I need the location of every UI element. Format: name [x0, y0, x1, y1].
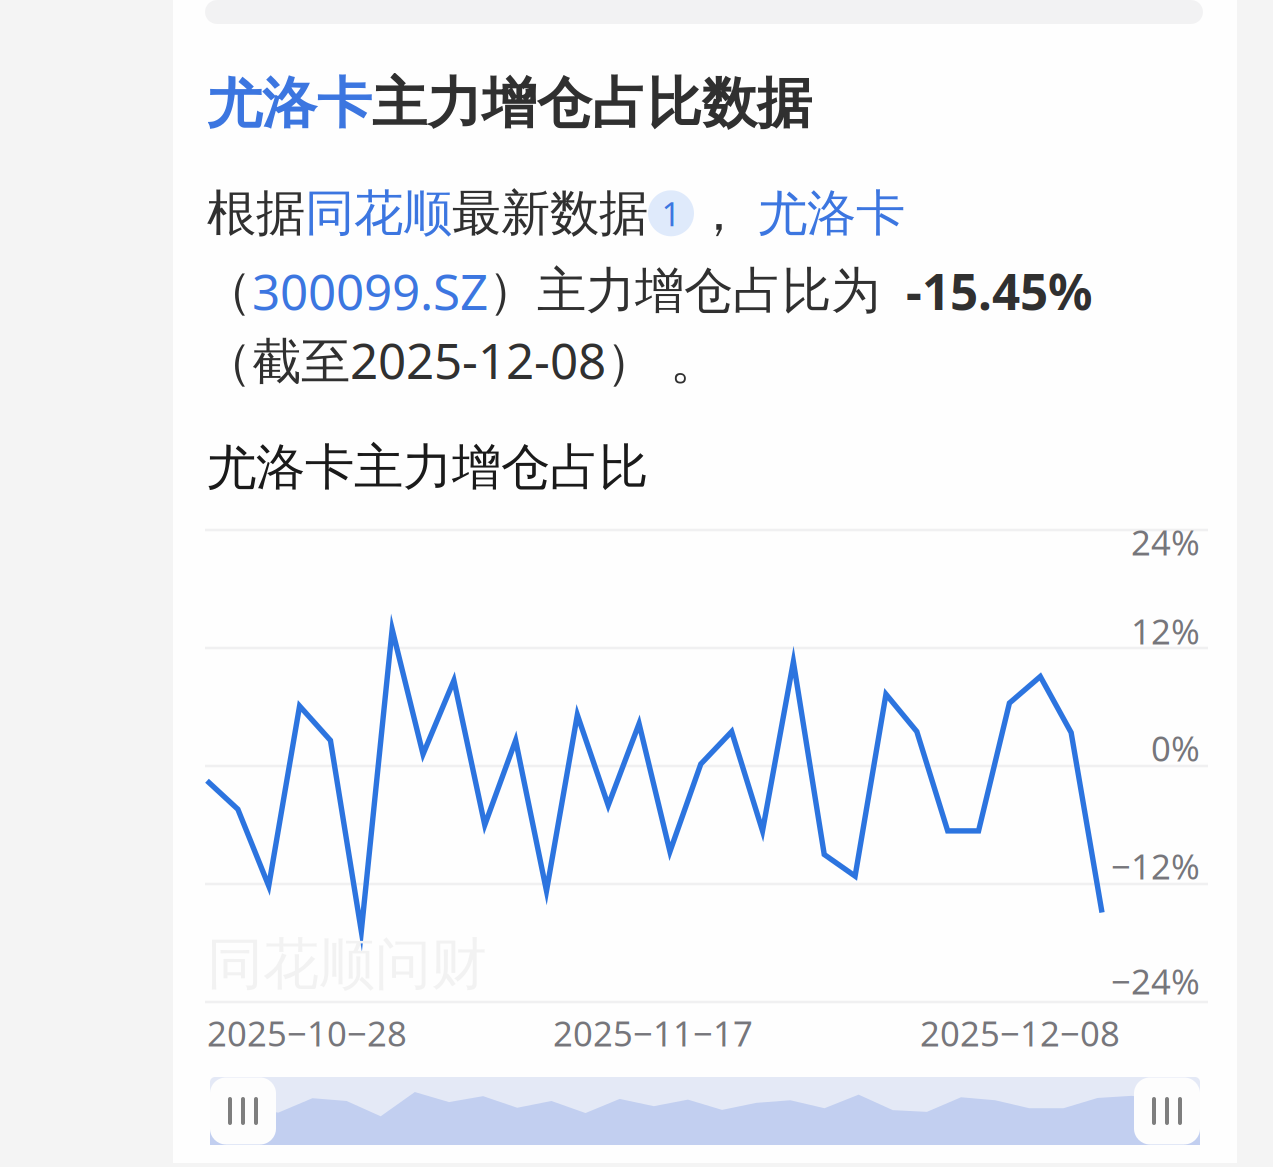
- button[interactable]: 尤洛卡: [743, 183, 905, 244]
- button[interactable]: 尤洛卡: [207, 70, 372, 137]
- staticText: 同花顺问财: [207, 930, 487, 999]
- button[interactable]: 300099.SZ: [252, 258, 488, 323]
- staticText: −12%: [1111, 843, 1200, 889]
- staticText: ）主力增仓占比为: [488, 260, 880, 321]
- staticText: 尤洛卡: [207, 70, 372, 137]
- staticText: 同花顺: [305, 183, 452, 244]
- staticText: （: [203, 260, 252, 321]
- button[interactable]: Range start handle: [210, 1077, 276, 1144]
- staticText: 24%: [1131, 519, 1200, 565]
- staticText: 2025−10−28: [207, 1010, 407, 1056]
- staticText: 尤洛卡: [743, 183, 905, 244]
- staticText: 主力增仓占比数据: [372, 70, 812, 137]
- button[interactable]: 同花顺: [305, 183, 452, 244]
- staticText: 尤洛卡主力增仓占比: [207, 437, 648, 498]
- staticText: 2025−11−17: [553, 1010, 753, 1056]
- staticText: 0%: [1151, 725, 1200, 771]
- staticText: （截至2025-12-08） 。: [203, 327, 719, 392]
- staticText: 12%: [1131, 608, 1200, 654]
- staticText: -15.45%: [906, 258, 1092, 323]
- staticText: −24%: [1111, 958, 1200, 1004]
- staticText: 根据: [207, 183, 305, 244]
- button[interactable]: Range end handle: [1134, 1077, 1200, 1144]
- staticText: ，: [694, 183, 743, 244]
- staticText: 最新数据: [452, 183, 648, 244]
- staticText: 2025−12−08: [920, 1010, 1120, 1056]
- staticText: 300099.SZ: [252, 258, 488, 323]
- staticText: 1: [661, 191, 680, 235]
- button[interactable]: Source reference 1: [648, 190, 694, 236]
